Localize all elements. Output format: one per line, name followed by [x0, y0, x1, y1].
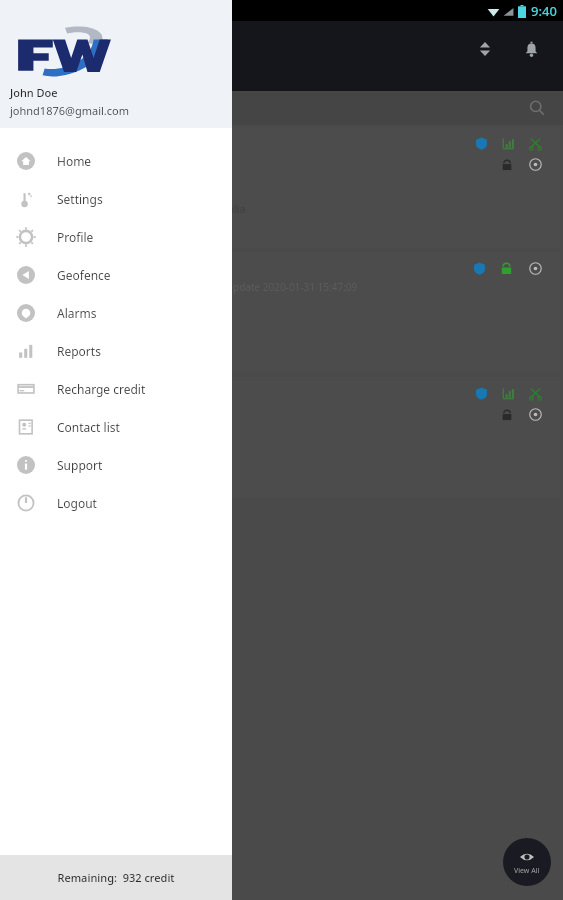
- staticText: Profile: [57, 229, 94, 245]
- staticText: Home: [57, 153, 92, 169]
- button[interactable]: Notifications: [513, 31, 549, 67]
- button[interactable]: View All: [503, 838, 551, 886]
- button[interactable]: Detect: [10, 65, 69, 85]
- button[interactable]: Geofence: [0, 256, 232, 294]
- button[interactable]: 34%: [3, 127, 560, 248]
- button[interactable]: Reports: [0, 332, 232, 370]
- staticText: 13: [56, 71, 65, 81]
- staticText: Blue Gum Valley, Fremantle, Western Aust…: [7, 201, 246, 216]
- button[interactable]: Contact list: [0, 408, 232, 446]
- button[interactable]: Logout: [0, 484, 232, 522]
- staticText: Recharge credit: [57, 381, 146, 397]
- other: Search: [529, 100, 545, 116]
- button[interactable]: Profile: [0, 218, 232, 256]
- staticText: Support: [57, 457, 103, 473]
- staticText: Remaining: 932 credit: [57, 870, 175, 885]
- button[interactable]: Remaining: 932 credit: [0, 855, 232, 900]
- staticText: johnd1876@gmail.com: [10, 103, 129, 118]
- staticText: View All: [514, 866, 540, 876]
- button[interactable]: Last update 2020-01-31 15:47:09: [3, 252, 560, 373]
- button[interactable]: Recharge credit: [0, 370, 232, 408]
- staticText: Reports: [57, 343, 101, 359]
- button[interactable]: Settings: [0, 180, 232, 218]
- staticText: Settings: [57, 191, 103, 207]
- staticText: Logout: [57, 495, 97, 511]
- button[interactable]: Home: [0, 142, 232, 180]
- staticText: Detect: [12, 67, 49, 83]
- staticText: Contact list: [57, 419, 120, 435]
- staticText: Last update 2020-01-31 15:47:09: [205, 280, 358, 294]
- button[interactable]: Alarms: [0, 294, 232, 332]
- staticText: John Doe: [10, 85, 58, 100]
- button[interactable]: Western Australia, Australia: [3, 377, 560, 498]
- staticText: Western Australia, Australia: [7, 451, 150, 466]
- staticText: Geofence: [57, 267, 111, 283]
- button[interactable]: Sort: [467, 31, 503, 67]
- button[interactable]: Support: [0, 446, 232, 484]
- staticText: 9:40: [531, 2, 557, 20]
- staticText: Alarms: [57, 305, 97, 321]
